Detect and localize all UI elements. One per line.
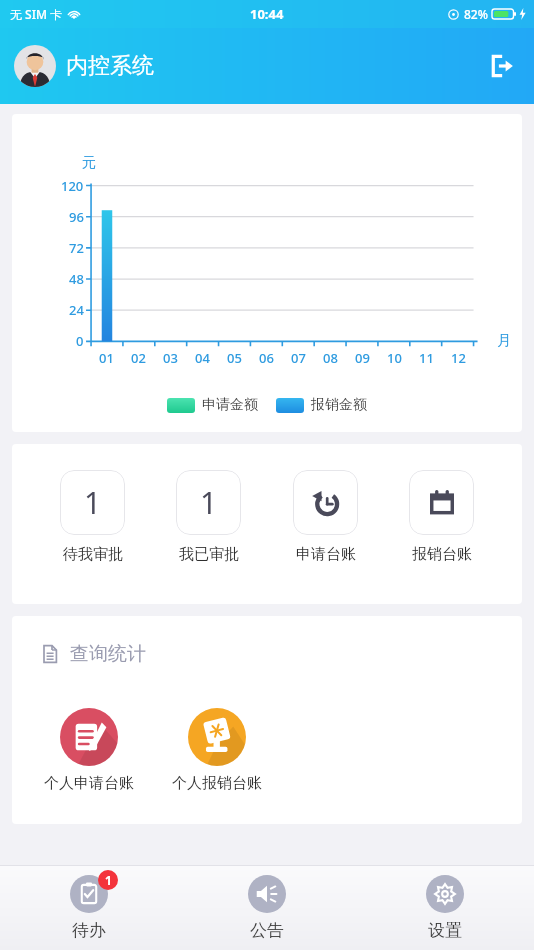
staticText: 我已审批 (179, 545, 239, 564)
staticText: 72 (69, 239, 84, 257)
staticText: 04 (195, 349, 210, 367)
staticText: 96 (69, 208, 84, 226)
staticText: 01 (99, 349, 114, 367)
staticText: 月 (497, 332, 511, 350)
staticText: 公告 (250, 920, 284, 941)
staticText: 03 (163, 349, 178, 367)
button[interactable]: 个人报销台账 (162, 708, 272, 793)
button[interactable]: 报销台账 (405, 470, 478, 564)
button[interactable]: 公告 (178, 866, 356, 950)
staticText: 查询统计 (70, 642, 146, 666)
staticText: 10 (387, 349, 402, 367)
staticText: 无 SIM 卡 (10, 6, 63, 22)
button[interactable]: 1 (0, 866, 178, 950)
staticText: 24 (69, 301, 84, 319)
staticText: 待办 (72, 920, 106, 941)
staticText: 1 (200, 482, 218, 523)
staticText: 0 (76, 332, 84, 350)
staticText: 11 (419, 349, 434, 367)
staticText: 待我审批 (63, 545, 123, 564)
staticText: 申请台账 (296, 545, 356, 564)
staticText: 09 (355, 349, 370, 367)
button[interactable]: 申请台账 (289, 470, 362, 564)
button[interactable]: 1 (56, 470, 129, 564)
staticText: 内控系统 (66, 52, 154, 80)
staticText: 82% (464, 6, 488, 22)
button[interactable]: 1 (172, 470, 245, 564)
staticText: 10:44 (250, 5, 284, 23)
staticText: 元 (82, 154, 96, 172)
staticText: 报销台账 (412, 545, 472, 564)
staticText: 120 (61, 177, 84, 195)
staticText: 1 (84, 482, 102, 523)
staticText: 申请金额 (202, 396, 258, 414)
staticText: 48 (69, 270, 84, 288)
button[interactable]: Profile (14, 45, 56, 87)
staticText: 报销金额 (311, 396, 367, 414)
staticText: 06 (259, 349, 274, 367)
staticText: 07 (291, 349, 306, 367)
staticText: 个人申请台账 (44, 774, 134, 793)
staticText: 05 (227, 349, 242, 367)
staticText: 个人报销台账 (172, 774, 262, 793)
button[interactable]: 个人申请台账 (34, 708, 144, 793)
staticText: 1 (105, 872, 112, 888)
staticText: 02 (131, 349, 146, 367)
button[interactable]: Logout (478, 44, 522, 88)
staticText: 12 (451, 349, 466, 367)
button[interactable]: 设置 (356, 866, 534, 950)
staticText: 设置 (428, 920, 462, 941)
staticText: 08 (323, 349, 338, 367)
